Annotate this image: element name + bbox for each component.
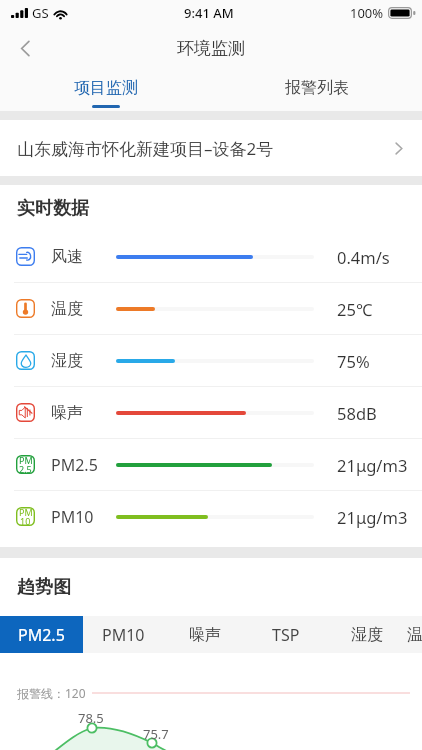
staticText: 温度 [407,625,422,645]
button[interactable]: 湿度 [0,335,422,386]
staticText: 75.7 [143,725,169,743]
button[interactable]: 湿度 [326,616,407,653]
staticText: 趋势图 [17,576,71,599]
staticText: 湿度 [351,625,383,645]
staticText: PM10 [102,624,145,646]
staticText: 100% [350,4,384,22]
staticText: 噪声 [189,625,221,645]
staticText: 10 [20,515,31,527]
staticText: PM2.5 [18,624,65,646]
button[interactable]: 风速 [0,231,422,282]
staticText: 25℃ [337,298,373,320]
staticText: 2.5 [19,463,32,475]
staticText: 项目监测 [74,78,138,98]
staticText: 风速 [51,247,83,267]
staticText: 实时数据 [17,197,89,220]
staticText: 报警列表 [285,78,349,98]
staticText: 环境监测 [177,38,245,59]
button[interactable]: 温度 [0,283,422,334]
button[interactable]: 噪声 [0,387,422,438]
button[interactable]: 噪声 [164,616,245,653]
staticText: 0.4m/s [337,246,390,268]
staticText: PM10 [51,506,94,528]
staticText: 58dB [337,402,377,424]
staticText: TSP [272,624,300,646]
staticText: 山东威海市怀化新建项目–设备2号 [17,137,274,160]
button[interactable]: 报警列表 [211,70,422,111]
staticText: 报警线：120 [17,685,86,701]
button[interactable]: TSP [245,616,326,653]
staticText: PM [19,506,33,518]
staticText: 湿度 [51,351,83,371]
staticText: 9:41 AM [184,4,234,22]
staticText: 21μg/m3 [337,506,408,528]
button[interactable]: Back [6,29,44,67]
staticText: 噪声 [51,403,83,423]
button[interactable]: PM10 [83,616,164,653]
button[interactable]: PM [0,439,422,490]
button[interactable]: 项目监测 [0,70,211,111]
button[interactable]: 山东威海市怀化新建项目–设备2号 [0,120,422,176]
staticText: GS [32,4,49,22]
staticText: 21μg/m3 [337,454,408,476]
staticText: 78.5 [78,709,104,727]
button[interactable]: PM2.5 [0,616,83,653]
button[interactable]: 温度 [407,616,422,653]
staticText: 75% [337,350,370,372]
staticText: PM2.5 [51,454,98,476]
button[interactable]: PM [0,491,422,542]
staticText: 温度 [51,299,83,319]
staticText: PM [19,454,33,466]
